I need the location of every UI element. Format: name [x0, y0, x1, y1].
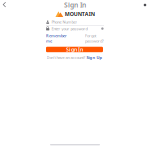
staticText: Remember me: [46, 33, 67, 44]
button[interactable]: Sign Up: [86, 55, 102, 60]
staticText: Sign In: [64, 1, 86, 9]
button[interactable]: Help: [140, 0, 150, 10]
staticText: Don't have an account?: [46, 55, 85, 60]
button[interactable]: Sign In: [46, 47, 103, 52]
staticText: Sign Up: [86, 55, 102, 60]
staticText: MOUNTAIN: [65, 10, 95, 18]
staticText: Phone Number: [51, 19, 77, 25]
button[interactable]: Back: [0, 0, 10, 10]
staticText: Forgot password?: [85, 33, 104, 44]
button[interactable]: Show password: [101, 27, 104, 30]
button[interactable]: Remember me: [46, 33, 67, 44]
staticText: Enter your password: [51, 26, 87, 31]
staticText: Sign In: [66, 46, 83, 53]
button[interactable]: Forgot password?: [85, 33, 104, 44]
